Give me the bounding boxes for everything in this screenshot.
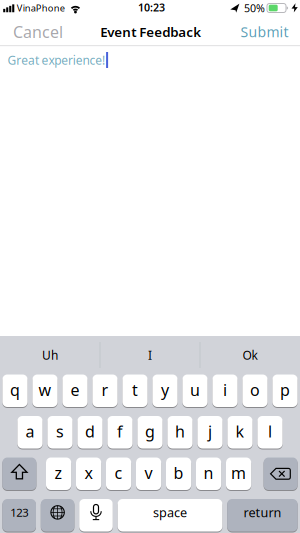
staticText: y (161, 379, 169, 401)
staticText: t (132, 379, 138, 401)
staticText: l (268, 420, 272, 442)
staticText: 123 (10, 504, 28, 520)
staticText: Submit (240, 22, 288, 41)
button[interactable]: space (118, 499, 222, 531)
button[interactable]: w (32, 374, 58, 407)
staticText: k (235, 420, 244, 442)
button[interactable]: e (62, 374, 88, 407)
button[interactable]: s (47, 416, 73, 448)
button[interactable]: Cancel (13, 21, 63, 43)
staticText: e (70, 379, 79, 401)
staticText: Ok (242, 347, 257, 363)
button[interactable]: b (166, 457, 191, 490)
staticText: q (10, 379, 20, 401)
button[interactable]: c (106, 457, 131, 490)
staticText: h (175, 420, 185, 442)
button[interactable]: z (46, 457, 71, 490)
button[interactable]: n (196, 457, 221, 490)
button[interactable]: v (136, 457, 161, 490)
staticText: j (208, 420, 212, 442)
button[interactable]: m (226, 457, 251, 490)
staticText: o (250, 379, 260, 401)
staticText: p (280, 379, 290, 401)
staticText: f (117, 420, 123, 442)
staticText: z (55, 462, 63, 484)
button[interactable]: 123 (2, 499, 36, 531)
button[interactable]: y (152, 374, 178, 407)
button[interactable]: x (76, 457, 101, 490)
staticText: v (145, 462, 153, 484)
button[interactable]: Submit (240, 22, 288, 41)
staticText: Cancel (13, 21, 63, 43)
button[interactable]: r (92, 374, 118, 407)
staticText: u (190, 379, 200, 401)
staticText: r (101, 379, 108, 401)
staticText: d (85, 420, 95, 442)
button[interactable]: Dictate (79, 499, 113, 531)
staticText: b (174, 462, 184, 484)
button[interactable]: Next keyboard (41, 499, 74, 531)
button[interactable]: Ok (200, 336, 299, 374)
staticText: I (148, 347, 152, 363)
staticText: i (223, 379, 227, 401)
button[interactable]: q (2, 374, 28, 407)
staticText: g (145, 420, 155, 442)
button[interactable]: Shift (2, 457, 36, 490)
button[interactable]: Delete (264, 457, 298, 490)
button[interactable]: l (257, 416, 283, 448)
button[interactable]: a (17, 416, 43, 448)
button[interactable]: t (122, 374, 148, 407)
button[interactable]: return (227, 499, 298, 531)
button[interactable]: g (137, 416, 163, 448)
staticText: Event Feedback (100, 23, 201, 41)
staticText: Uh (42, 347, 58, 363)
staticText: a (25, 420, 34, 442)
staticText: 10:23 (138, 0, 165, 15)
staticText: 50% (244, 1, 265, 15)
button[interactable]: d (77, 416, 103, 448)
staticText: m (231, 462, 246, 484)
button[interactable]: k (227, 416, 253, 448)
button[interactable]: Uh (0, 336, 99, 374)
staticText: w (38, 379, 51, 401)
staticText: n (204, 462, 214, 484)
staticText: Great experience! (7, 52, 105, 68)
button[interactable]: j (197, 416, 223, 448)
button[interactable]: p (272, 374, 298, 407)
button[interactable]: i (212, 374, 238, 407)
button[interactable]: o (242, 374, 268, 407)
button[interactable]: h (167, 416, 193, 448)
staticText: c (115, 462, 123, 484)
staticText: return (243, 504, 281, 521)
staticText: VinaPhone (17, 2, 65, 14)
button[interactable]: I (100, 336, 199, 374)
button[interactable]: f (107, 416, 133, 448)
staticText: s (56, 420, 64, 442)
button[interactable]: u (182, 374, 208, 407)
staticText: x (85, 462, 93, 484)
staticText: space (153, 504, 187, 521)
